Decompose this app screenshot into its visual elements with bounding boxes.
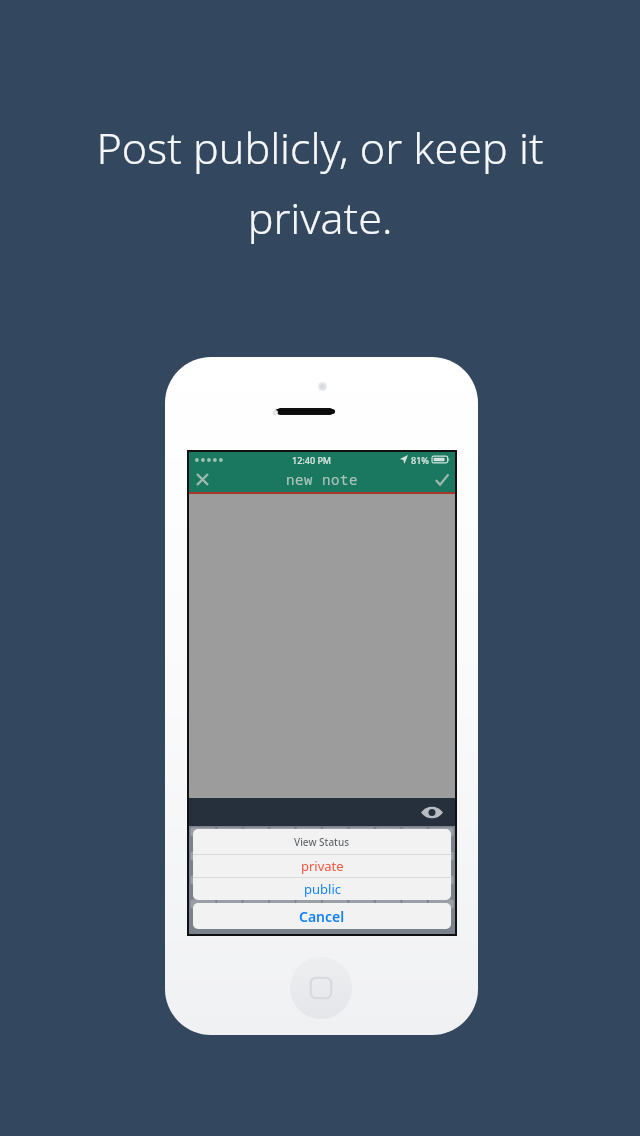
staticText: private <box>301 857 344 875</box>
staticText: Cancel <box>299 907 345 926</box>
button[interactable]: Cancel <box>193 903 451 929</box>
button[interactable]: View status <box>419 799 445 825</box>
button[interactable]: Done <box>429 467 455 492</box>
button[interactable]: Close <box>189 467 215 492</box>
staticText: public <box>304 880 341 898</box>
staticText: View Status <box>294 835 350 849</box>
button[interactable]: Home <box>290 957 352 1019</box>
staticText: new note <box>286 470 358 489</box>
staticText: Post publicly, or keep it private. <box>20 118 620 247</box>
staticText: 81% <box>411 454 429 466</box>
button[interactable]: public <box>193 878 451 900</box>
staticText: 12:40 PM <box>292 454 332 466</box>
button[interactable]: private <box>193 855 451 877</box>
